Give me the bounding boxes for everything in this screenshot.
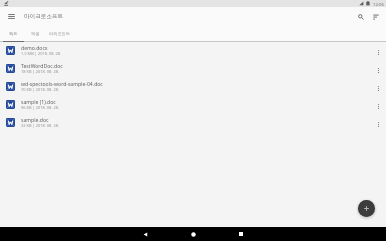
button[interactable]: demo.docx <box>0 42 386 60</box>
button[interactable]: TestWordDoc.doc <box>0 60 386 78</box>
button[interactable]: Add <box>355 197 378 220</box>
staticText: 마이크로소프트 <box>24 13 64 20</box>
staticText: 1.3 MB | 2018. 08. 28. <box>21 51 62 56</box>
staticText: sample (1).doc <box>21 99 56 106</box>
staticText: 12:06 <box>373 1 384 7</box>
staticText: sample.doc <box>21 117 49 124</box>
button[interactable]: More options <box>368 42 386 60</box>
button[interactable]: More options <box>368 96 386 114</box>
button[interactable]: sample.doc <box>0 114 386 132</box>
button[interactable]: Back <box>121 227 169 241</box>
staticText: 32 KB | 2018. 08. 28. <box>21 123 59 128</box>
staticText: 파워포인트 <box>49 31 70 36</box>
button[interactable]: Navigation menu <box>2 7 21 26</box>
staticText: demo.docx <box>21 45 48 52</box>
button[interactable]: Search <box>353 9 368 24</box>
button[interactable]: 엑셀 <box>26 26 44 42</box>
staticText: 18 KB | 2018. 08. 28. <box>21 69 59 74</box>
button[interactable]: Recent apps <box>217 227 265 241</box>
button[interactable]: wd-spectools-word-sample-04.doc <box>0 78 386 96</box>
button[interactable]: Sort <box>368 9 383 24</box>
button[interactable]: More options <box>368 114 386 132</box>
button[interactable]: More options <box>368 78 386 96</box>
button[interactable]: 워드 <box>0 26 26 42</box>
staticText: 70 KB | 2018. 08. 28. <box>21 87 59 92</box>
staticText: 96 KB | 2018. 08. 28. <box>21 105 59 110</box>
button[interactable]: Home <box>169 227 217 241</box>
button[interactable]: sample (1).doc <box>0 96 386 114</box>
staticText: 워드 <box>9 31 18 36</box>
button[interactable]: More options <box>368 60 386 78</box>
staticText: TestWordDoc.doc <box>21 63 63 70</box>
button[interactable]: 파워포인트 <box>44 26 75 42</box>
staticText: wd-spectools-word-sample-04.doc <box>21 81 103 88</box>
staticText: 엑셀 <box>31 31 40 36</box>
